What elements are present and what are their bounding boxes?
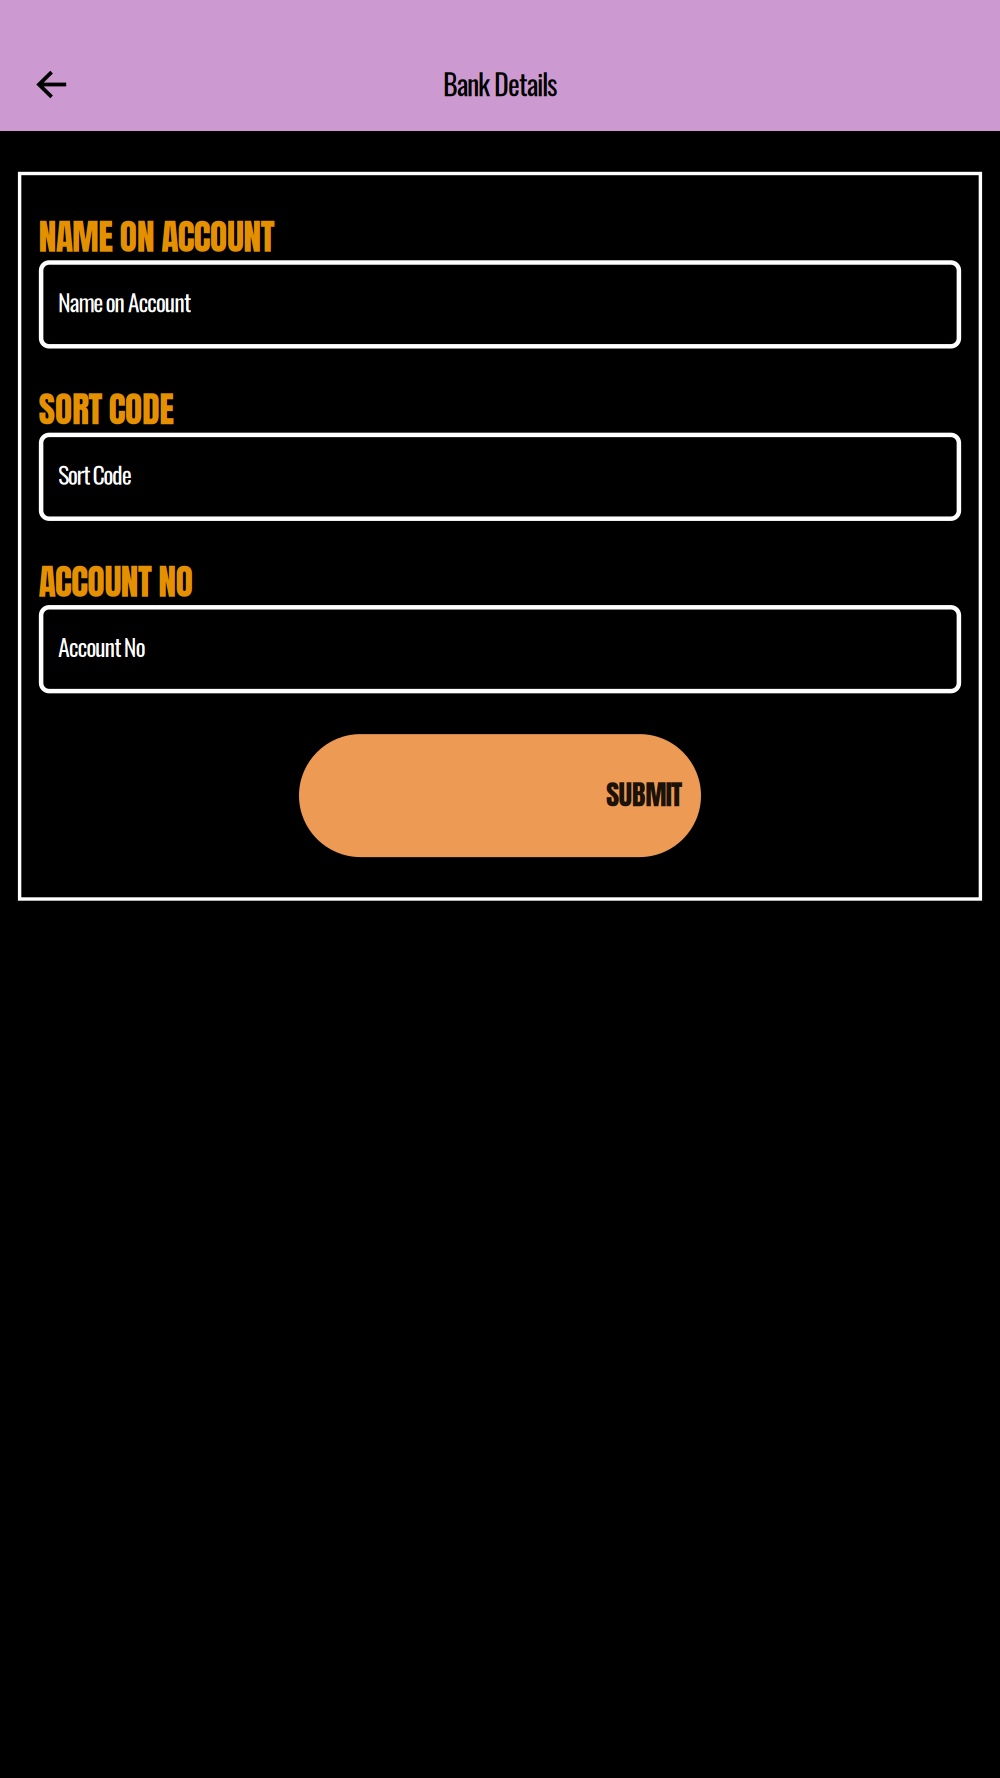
staticText: Bank Details [443, 63, 557, 104]
button[interactable]: Name on Account [41, 262, 959, 346]
staticText: Account No [58, 628, 145, 664]
staticText: NAME ON ACCOUNT [39, 209, 274, 264]
button[interactable]: Sort Code [41, 435, 959, 519]
staticText: SORT CODE [39, 382, 174, 436]
staticText: Name on Account [58, 284, 191, 319]
staticText: SUBMIT [606, 772, 682, 816]
staticText: ACCOUNT NO [39, 554, 193, 608]
staticText: Sort Code [58, 456, 132, 492]
button[interactable]: Back [0, 2, 88, 128]
button[interactable]: Account No [41, 607, 959, 691]
button[interactable]: SUBMIT [299, 734, 701, 857]
